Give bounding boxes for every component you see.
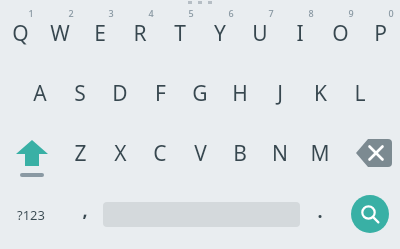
staticText: T <box>174 19 186 48</box>
button[interactable]: Q <box>0 4 40 62</box>
button[interactable]: K <box>300 64 340 122</box>
button[interactable]: M <box>300 124 340 182</box>
staticText: P <box>374 19 387 48</box>
button[interactable]: J <box>260 64 300 122</box>
button[interactable]: Shift <box>8 126 56 182</box>
button[interactable]: F <box>140 64 180 122</box>
staticText: U <box>252 19 268 48</box>
button[interactable]: B <box>220 124 260 182</box>
button[interactable]: S <box>60 64 100 122</box>
button[interactable]: R <box>120 4 160 62</box>
staticText: G <box>192 79 208 108</box>
button[interactable]: Backspace <box>350 127 398 179</box>
button[interactable]: , <box>65 190 105 240</box>
staticText: Q <box>12 19 29 48</box>
button[interactable]: O <box>320 4 360 62</box>
staticText: 9 <box>348 7 354 19</box>
staticText: V <box>194 139 207 168</box>
staticText: 3 <box>108 7 114 19</box>
button[interactable]: I <box>280 4 320 62</box>
staticText: W <box>50 19 70 48</box>
staticText: 4 <box>148 7 154 19</box>
button[interactable]: E <box>80 4 120 62</box>
staticText: 0 <box>388 7 394 19</box>
button[interactable]: ?123 <box>4 190 58 240</box>
staticText: D <box>112 79 128 108</box>
button[interactable]: G <box>180 64 220 122</box>
staticText: N <box>272 139 288 168</box>
button[interactable]: A <box>20 64 60 122</box>
button[interactable]: W <box>40 4 80 62</box>
staticText: J <box>277 79 283 108</box>
button[interactable]: X <box>100 124 140 182</box>
button[interactable]: . <box>302 190 338 240</box>
staticText: ?123 <box>17 206 45 224</box>
button[interactable]: D <box>100 64 140 122</box>
staticText: E <box>94 19 106 48</box>
staticText: F <box>155 79 166 108</box>
staticText: . <box>317 199 323 224</box>
staticText: B <box>233 139 247 168</box>
button[interactable]: V <box>180 124 220 182</box>
staticText: 6 <box>228 7 234 19</box>
button[interactable]: Y <box>200 4 240 62</box>
staticText: H <box>232 79 248 108</box>
staticText: , <box>82 198 88 223</box>
button[interactable]: U <box>240 4 280 62</box>
staticText: L <box>354 79 366 108</box>
staticText: 1 <box>28 7 34 19</box>
staticText: O <box>332 19 349 48</box>
staticText: 8 <box>308 7 314 19</box>
staticText: K <box>314 79 327 108</box>
staticText: 7 <box>268 7 274 19</box>
staticText: S <box>74 79 86 108</box>
staticText: 5 <box>188 7 194 19</box>
staticText: M <box>310 139 330 168</box>
staticText: R <box>133 19 147 48</box>
button[interactable]: L <box>340 64 380 122</box>
button[interactable]: T <box>160 4 200 62</box>
staticText: 2 <box>68 7 74 19</box>
staticText: Z <box>74 139 87 168</box>
staticText: I <box>296 19 304 48</box>
button[interactable]: H <box>220 64 260 122</box>
staticText: A <box>33 79 47 108</box>
button[interactable]: Search <box>351 195 389 233</box>
button[interactable]: N <box>260 124 300 182</box>
button[interactable]: P <box>360 4 400 62</box>
staticText: C <box>153 139 167 168</box>
button[interactable]: C <box>140 124 180 182</box>
staticText: X <box>114 139 127 168</box>
staticText: Y <box>214 19 226 48</box>
button[interactable]: Z <box>60 124 100 182</box>
